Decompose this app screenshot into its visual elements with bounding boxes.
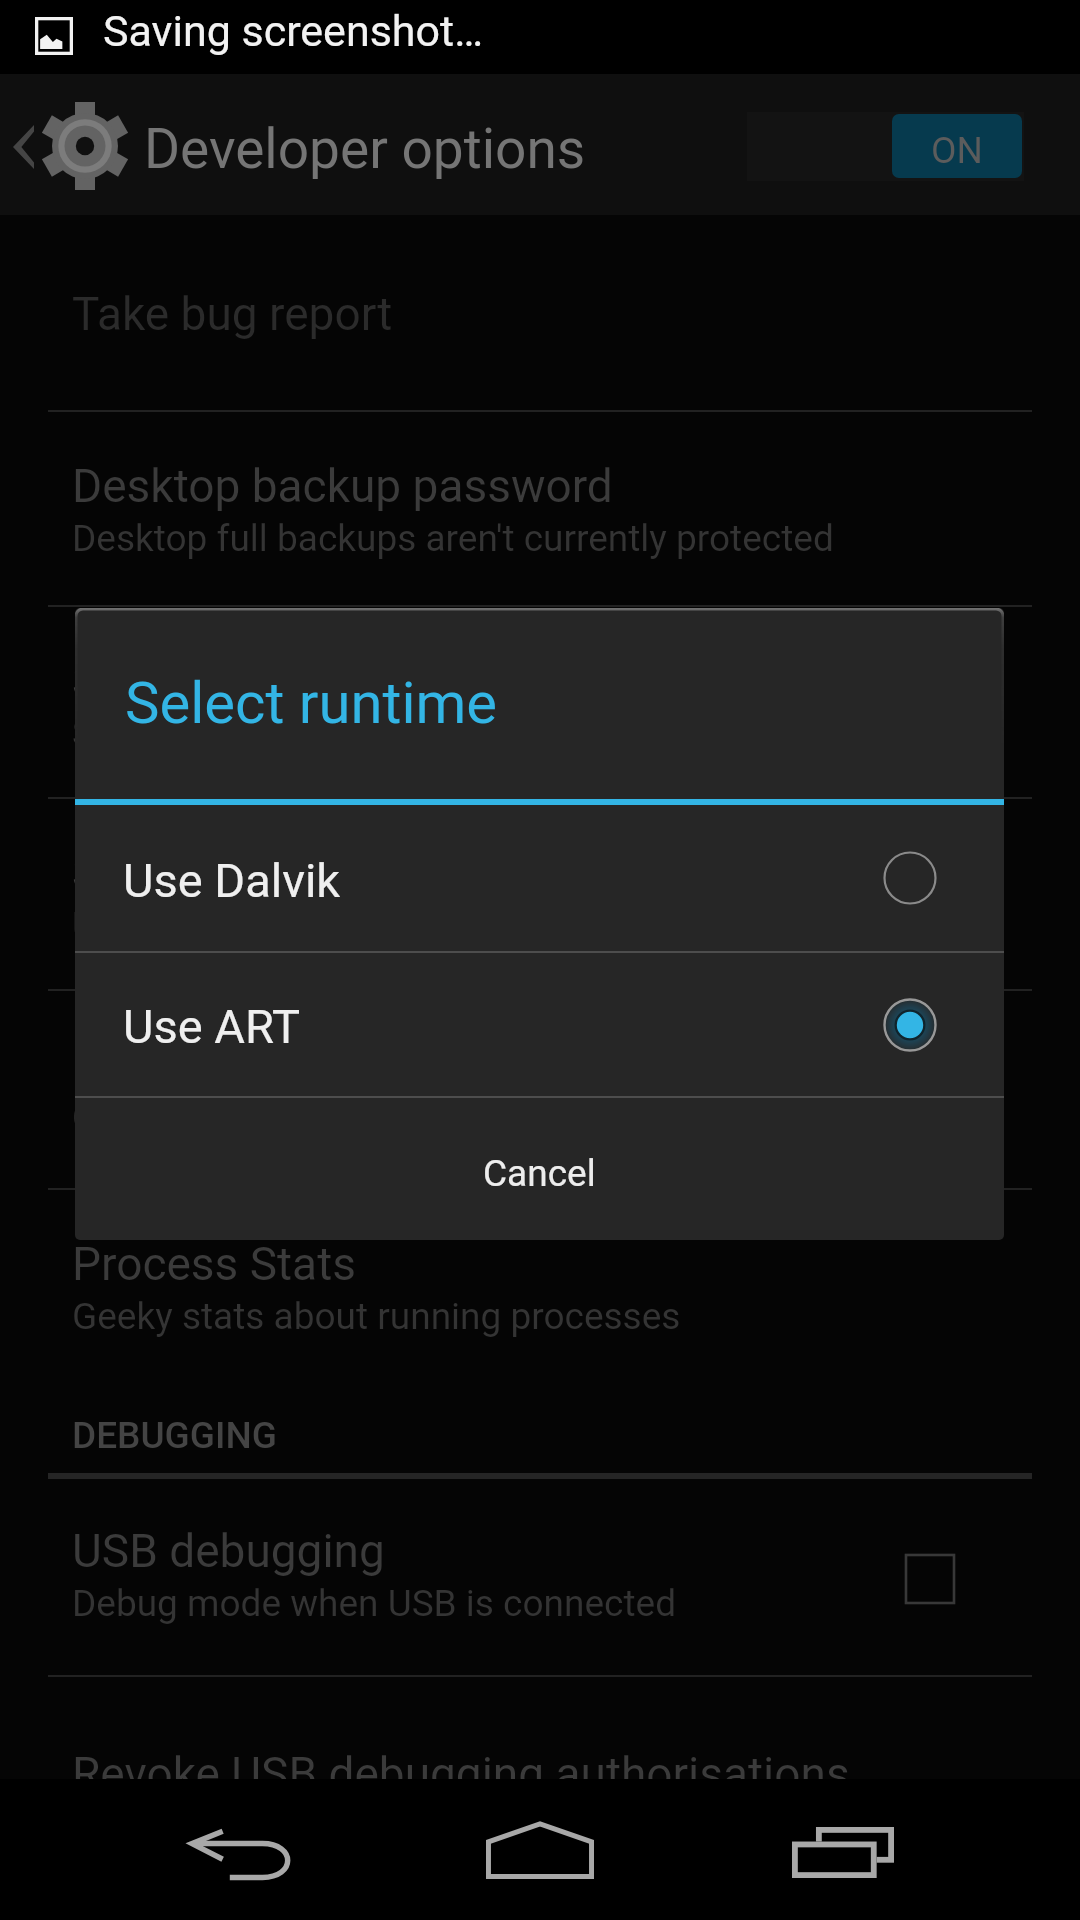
staticText: Desktop backup password	[72, 459, 613, 513]
staticText: Take bug report	[72, 287, 393, 341]
staticText: Cancel	[483, 1152, 596, 1195]
staticText: Select runtime	[72, 846, 368, 900]
button[interactable]: Stay awake	[0, 605, 1080, 797]
button[interactable]: Cancel	[75, 1098, 1004, 1240]
staticText: Process Stats	[72, 1237, 356, 1291]
staticText: Capture all bluetooth HCI packets in a f…	[72, 1096, 749, 1139]
button[interactable]: Developer options	[0, 74, 620, 215]
staticText: Geeky stats about running processes	[72, 1295, 681, 1338]
staticText: USB debugging	[72, 1524, 385, 1578]
button[interactable]: Developer options on	[747, 112, 1024, 181]
button[interactable]: Take bug report	[0, 215, 1080, 410]
staticText: Desktop full backups aren't currently pr…	[72, 517, 834, 560]
button[interactable]: Use Dalvik	[75, 805, 1004, 951]
button[interactable]: Process Stats	[0, 1188, 1080, 1390]
staticText: ON	[931, 129, 983, 172]
staticText: Revoke USB debugging authorisations	[72, 1747, 850, 1801]
staticText: Select runtime	[125, 669, 498, 737]
button[interactable]: Back	[120, 1779, 360, 1920]
staticText: Saving screenshot…	[103, 6, 483, 56]
staticText: Use Dalvik	[123, 853, 341, 908]
staticText: Bluetooth HCI snoop log	[72, 1038, 570, 1092]
staticText: DEBUGGING	[72, 1414, 277, 1457]
button[interactable]: Recent apps	[723, 1779, 963, 1920]
staticText: Screen will never sleep while charging	[72, 712, 693, 755]
staticText: Debug mode when USB is connected	[72, 1582, 677, 1625]
button[interactable]: Desktop backup password	[0, 410, 1080, 605]
button[interactable]: Bluetooth HCI snoop log	[0, 989, 1080, 1188]
staticText: Use ART	[123, 999, 301, 1054]
staticText: Developer options	[144, 117, 586, 181]
staticText: Use ART	[72, 904, 212, 947]
button[interactable]: Select runtime	[0, 797, 1080, 989]
button[interactable]: USB debugging	[0, 1478, 1080, 1675]
button[interactable]: Revoke USB debugging authorisations	[0, 1675, 1080, 1779]
staticText: Stay awake	[72, 654, 305, 708]
button[interactable]: Use ART	[75, 953, 1004, 1096]
button[interactable]: Home	[420, 1779, 660, 1920]
